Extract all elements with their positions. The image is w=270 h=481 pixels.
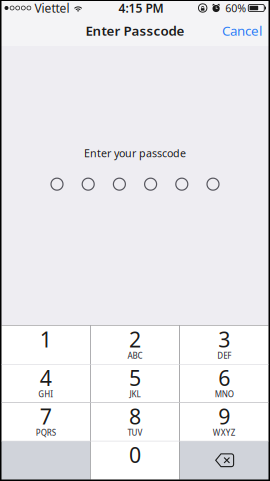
staticText: Enter Passcode: [85, 22, 184, 39]
staticText: WXYZ: [213, 427, 236, 438]
button[interactable]: 3: [180, 325, 268, 364]
staticText: Cancel: [222, 22, 262, 39]
button[interactable]: 8: [91, 402, 179, 441]
button[interactable]: 7: [1, 402, 90, 441]
button[interactable]: 2: [91, 325, 179, 364]
staticText: TUV: [127, 427, 142, 438]
staticText: GHI: [38, 389, 53, 399]
staticText: 6: [218, 364, 230, 392]
button[interactable]: 0: [91, 441, 179, 479]
button[interactable]: 4: [1, 364, 90, 402]
button[interactable]: Cancel: [214, 15, 268, 46]
staticText: ABC: [127, 350, 142, 361]
button[interactable]: 1: [1, 325, 90, 364]
staticText: 2: [129, 325, 141, 353]
button[interactable]: Delete: [180, 441, 268, 479]
button[interactable]: 6: [180, 364, 268, 402]
staticText: 0: [129, 441, 141, 469]
button[interactable]: 9: [180, 402, 268, 441]
staticText: JKL: [129, 389, 140, 399]
staticText: DEF: [217, 350, 231, 361]
staticText: 3: [218, 325, 230, 353]
staticText: 1: [40, 325, 52, 353]
staticText: PQRS: [36, 427, 56, 438]
button[interactable]: 5: [91, 364, 179, 402]
staticText: 8: [129, 402, 141, 430]
staticText: MNO: [215, 389, 234, 399]
staticText: Enter your passcode: [84, 146, 186, 160]
staticText: 60%: [225, 1, 246, 15]
staticText: 9: [218, 402, 230, 430]
staticText: 5: [129, 364, 141, 392]
staticText: 4:15 PM: [118, 0, 163, 16]
staticText: Viettel: [34, 0, 69, 16]
staticText: 7: [40, 402, 52, 430]
staticText: 4: [40, 364, 52, 392]
